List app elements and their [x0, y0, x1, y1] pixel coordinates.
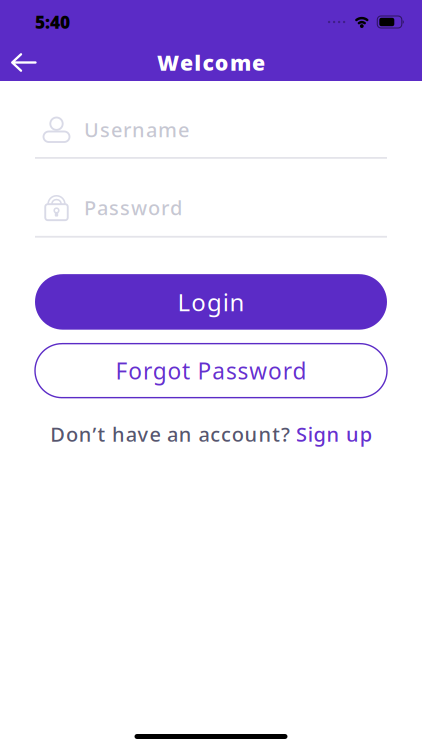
staticText: a [167, 421, 178, 447]
staticText: c [210, 421, 220, 447]
staticText: a [198, 421, 209, 447]
staticText: ? [281, 421, 290, 447]
staticText: e [180, 48, 193, 77]
staticText: o [66, 421, 78, 447]
staticText: r [143, 356, 152, 386]
staticText: o [167, 356, 181, 386]
staticText: 5:40 [35, 10, 70, 33]
staticText: n [230, 286, 245, 318]
staticText: o [148, 194, 160, 221]
staticText: t [272, 421, 280, 447]
staticText: o [232, 421, 244, 447]
staticText: o [128, 356, 142, 386]
staticText: m [158, 116, 177, 143]
staticText: r [161, 194, 169, 221]
button[interactable]: L [35, 274, 387, 330]
staticText: t [97, 421, 105, 447]
staticText: d [170, 194, 182, 221]
staticText: s [120, 194, 130, 221]
staticText: P [84, 194, 96, 221]
staticText: W [157, 48, 179, 77]
staticText: g [153, 356, 167, 386]
staticText: i [308, 421, 313, 447]
staticText: i [223, 286, 229, 318]
staticText: e [111, 116, 122, 143]
staticText: r [283, 356, 292, 386]
staticText: v [138, 421, 149, 447]
staticText: c [202, 48, 213, 77]
staticText: g [207, 286, 222, 318]
staticText: m [230, 48, 251, 77]
staticText: s [226, 356, 237, 386]
button[interactable]: U [35, 116, 387, 159]
staticText: e [149, 421, 160, 447]
button[interactable]: F [35, 344, 387, 398]
staticText: a [212, 356, 225, 386]
staticText: w [249, 356, 267, 386]
staticText: D [50, 421, 65, 447]
staticText: g [314, 421, 326, 447]
staticText: o [268, 356, 282, 386]
staticText: h [112, 421, 125, 447]
staticText: n [258, 421, 271, 447]
staticText: p [360, 421, 372, 447]
button[interactable]: P [35, 194, 387, 238]
staticText: o [191, 286, 206, 318]
staticText: e [252, 48, 265, 77]
staticText: U [84, 116, 99, 143]
staticText: c [221, 421, 231, 447]
staticText: F [116, 356, 128, 386]
staticText: s [100, 116, 110, 143]
staticText: d [292, 356, 306, 386]
staticText: s [109, 194, 119, 221]
staticText: a [126, 421, 137, 447]
staticText: n [79, 421, 92, 447]
staticText: n [326, 421, 339, 447]
staticText: l [194, 48, 201, 77]
staticText: s [238, 356, 249, 386]
staticText: P [197, 356, 211, 386]
staticText: n [132, 116, 145, 143]
button[interactable]: S [296, 421, 372, 447]
staticText: u [346, 421, 359, 447]
staticText: n [179, 421, 192, 447]
staticText: r [123, 116, 131, 143]
staticText: t [182, 356, 190, 386]
button[interactable] [0, 53, 37, 71]
staticText: o [215, 48, 229, 77]
staticText: e [178, 116, 189, 143]
staticText: L [177, 286, 190, 318]
staticText: a [146, 116, 157, 143]
staticText: w [131, 194, 147, 221]
staticText: ’ [93, 421, 97, 447]
staticText: S [296, 421, 307, 447]
staticText: a [97, 194, 108, 221]
staticText: u [245, 421, 258, 447]
